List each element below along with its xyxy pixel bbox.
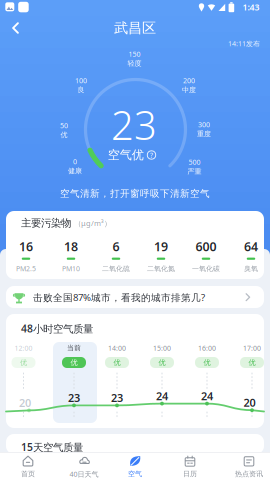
staticText: 12:00 bbox=[14, 343, 32, 353]
staticText: 24 bbox=[156, 389, 168, 403]
button[interactable]: 首页 bbox=[4, 453, 52, 480]
staticText: 热点资讯 bbox=[235, 469, 263, 478]
staticText: 当前 bbox=[67, 344, 81, 352]
staticText: 100 bbox=[75, 76, 87, 85]
staticText: 击败全国87%城市，看我的城市排第几? bbox=[33, 291, 205, 304]
staticText: 14:11发布 bbox=[228, 39, 260, 48]
staticText: 优 bbox=[248, 358, 255, 367]
staticText: 优 bbox=[60, 130, 67, 139]
staticText: 23 bbox=[111, 98, 157, 151]
staticText: 首页 bbox=[21, 469, 35, 478]
button[interactable]: 热点资讯 bbox=[225, 453, 270, 480]
staticText: 300 bbox=[198, 120, 210, 129]
staticText: 轻度 bbox=[127, 59, 141, 68]
staticText: 600 bbox=[195, 238, 216, 255]
staticText: 空气优 bbox=[108, 147, 144, 163]
staticText: 空气清新，打开窗呼吸下清新空气 bbox=[60, 187, 210, 200]
staticText: 200 bbox=[183, 76, 195, 85]
staticText: 优 bbox=[20, 358, 27, 367]
staticText: 健康 bbox=[68, 166, 82, 175]
staticText: PM10 bbox=[62, 264, 80, 273]
staticText: 40日天气 bbox=[69, 469, 98, 479]
staticText: 48小时空气质量 bbox=[21, 321, 93, 336]
staticText: 0 bbox=[73, 157, 77, 166]
staticText: PM2.5 bbox=[16, 264, 36, 273]
staticText: 1:43 bbox=[242, 1, 259, 13]
button[interactable]: 返回 bbox=[0, 13, 30, 43]
staticText: 日历 bbox=[183, 469, 197, 478]
staticText: 17:00 bbox=[243, 343, 261, 353]
staticText: 20 bbox=[19, 395, 31, 410]
staticText: 空气 bbox=[128, 469, 142, 478]
staticText: 优 bbox=[158, 358, 165, 367]
button[interactable]: 空气 bbox=[111, 453, 159, 480]
staticText: 15:00 bbox=[153, 343, 171, 353]
staticText: 6 bbox=[112, 238, 119, 255]
staticText: 中度 bbox=[182, 85, 196, 94]
staticText: 一氧化碳 bbox=[192, 264, 220, 273]
staticText: 15天空气质量 bbox=[21, 440, 83, 454]
staticText: 主要污染物 bbox=[21, 216, 71, 229]
staticText: 二氧化氮 bbox=[147, 264, 175, 273]
staticText: 严重 bbox=[187, 167, 201, 176]
staticText: （μg/m³） bbox=[74, 218, 111, 228]
staticText: 24 bbox=[201, 389, 213, 403]
staticText: 19 bbox=[154, 238, 168, 255]
staticText: ? bbox=[150, 150, 153, 160]
staticText: 16 bbox=[19, 238, 33, 255]
button[interactable]: 日历 bbox=[166, 453, 214, 480]
staticText: 二氧化硫 bbox=[102, 264, 130, 273]
staticText: 14:00 bbox=[108, 343, 126, 353]
staticText: 150 bbox=[128, 49, 140, 59]
staticText: 武昌区 bbox=[114, 19, 156, 37]
staticText: 23 bbox=[68, 390, 80, 405]
staticText: 500 bbox=[188, 157, 200, 167]
staticText: 优 bbox=[113, 358, 120, 367]
staticText: 优 bbox=[70, 358, 77, 367]
staticText: 优 bbox=[203, 358, 210, 367]
button[interactable]: 40日天气 bbox=[60, 453, 108, 480]
staticText: 臭氧 bbox=[244, 264, 258, 273]
staticText: 23 bbox=[111, 390, 123, 405]
staticText: 重度 bbox=[197, 129, 211, 138]
staticText: 18 bbox=[64, 238, 78, 255]
staticText: 良 bbox=[77, 85, 84, 94]
staticText: 64 bbox=[244, 238, 258, 255]
staticText: 16:00 bbox=[198, 343, 216, 353]
button[interactable]: 击败全国87%城市，看我的城市排第几? bbox=[0, 0, 270, 480]
staticText: 50 bbox=[60, 121, 68, 130]
staticText: 20 bbox=[243, 395, 255, 410]
